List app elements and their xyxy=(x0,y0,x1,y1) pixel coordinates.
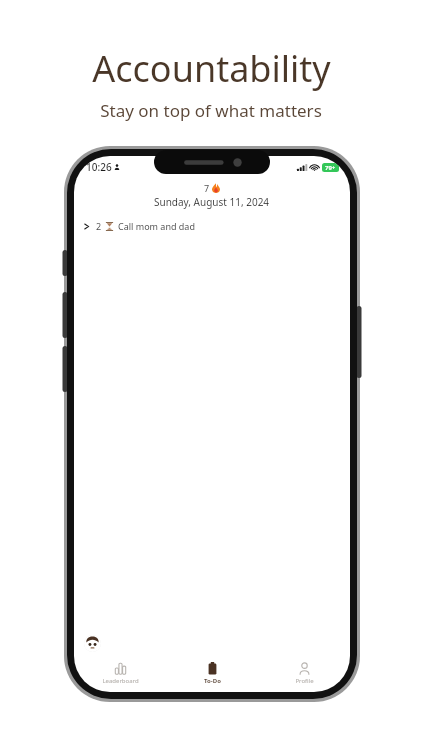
staticText: Leaderboard xyxy=(102,677,139,685)
staticText: To-Do xyxy=(204,677,221,685)
button[interactable]: Account avatar xyxy=(84,635,101,652)
staticText: 10:26 xyxy=(86,160,112,174)
staticText: 7 xyxy=(204,182,210,194)
staticText: Profile xyxy=(295,677,314,685)
button[interactable]: Profile xyxy=(258,658,350,685)
staticText: Stay on top of what matters xyxy=(100,99,322,122)
staticText: Accountability xyxy=(92,44,331,93)
staticText: 2 xyxy=(96,220,102,232)
button[interactable]: Leaderboard xyxy=(74,658,166,685)
button[interactable]: 2 xyxy=(74,218,350,234)
staticText: Call mom and dad xyxy=(118,220,195,232)
button[interactable]: To-Do xyxy=(166,658,258,685)
staticText: 79+ xyxy=(325,164,336,172)
staticText: Sunday, August 11, 2024 xyxy=(154,195,270,209)
